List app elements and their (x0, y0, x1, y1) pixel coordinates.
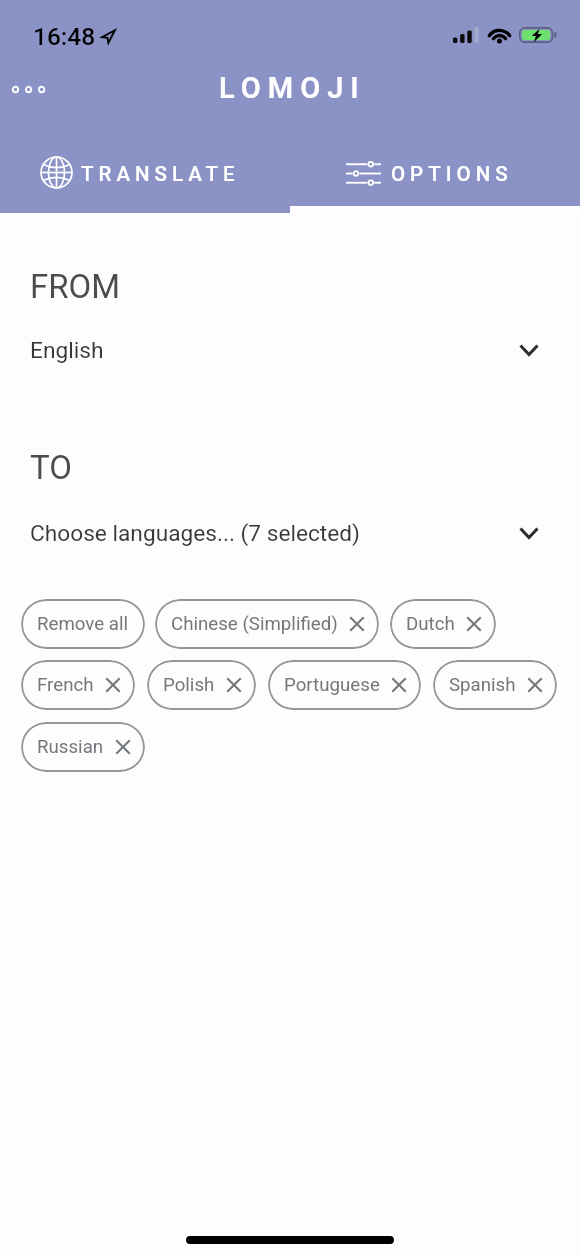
button[interactable]: Remove Russian (116, 740, 130, 754)
staticText: Russian (37, 736, 104, 758)
button[interactable]: Remove all (21, 599, 145, 649)
button[interactable]: Portuguese (268, 660, 421, 710)
staticText: Spanish (449, 674, 516, 696)
staticText: FROM (30, 267, 121, 306)
staticText: 16:48 (33, 22, 96, 51)
button[interactable]: Chinese (Simplified) (155, 599, 379, 649)
button[interactable]: TRANSLATE (0, 131, 290, 218)
staticText: TO (30, 448, 72, 487)
button[interactable]: Dutch (390, 599, 496, 649)
staticText: Portuguese (284, 674, 380, 696)
staticText: LOMOJI (219, 71, 366, 105)
button[interactable]: OPTIONS (290, 131, 580, 218)
staticText: Chinese (Simplified) (171, 613, 338, 635)
button[interactable]: Polish (147, 660, 256, 710)
staticText: English (30, 337, 104, 364)
staticText: French (37, 674, 94, 696)
staticText: TRANSLATE (81, 162, 240, 186)
staticText: Dutch (406, 613, 455, 635)
button[interactable]: Remove Spanish (528, 678, 542, 692)
button[interactable]: Remove French (106, 678, 120, 692)
button[interactable]: French (21, 660, 135, 710)
button[interactable]: Remove Polish (227, 678, 241, 692)
button[interactable]: Remove Portuguese (392, 678, 406, 692)
staticText: Remove all (37, 613, 129, 635)
button[interactable]: Remove Dutch (467, 617, 481, 631)
button[interactable]: Remove Chinese (Simplified) (350, 617, 364, 631)
button[interactable]: More options (6, 77, 55, 102)
button[interactable]: English (0, 329, 580, 371)
staticText: OPTIONS (391, 162, 513, 186)
staticText: Polish (163, 674, 215, 696)
button[interactable]: Spanish (433, 660, 557, 710)
staticText: Choose languages... (7 selected) (30, 520, 360, 547)
button[interactable]: Russian (21, 722, 145, 772)
button[interactable]: Choose languages... (7 selected) (0, 512, 580, 554)
